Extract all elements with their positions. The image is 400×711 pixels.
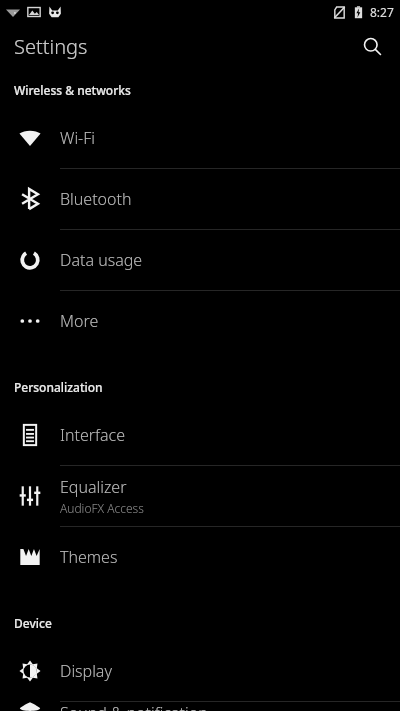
button[interactable]: Sound & notification bbox=[0, 702, 400, 711]
button[interactable]: Equalizer bbox=[0, 466, 400, 526]
staticText: More bbox=[60, 310, 99, 332]
staticText: Settings bbox=[14, 33, 88, 60]
staticText: Personalization bbox=[14, 379, 103, 395]
button[interactable]: Themes bbox=[0, 527, 400, 587]
staticText: Device bbox=[14, 615, 52, 631]
button[interactable]: Interface bbox=[0, 405, 400, 465]
staticText: Interface bbox=[60, 424, 126, 446]
staticText: Equalizer bbox=[60, 476, 127, 498]
staticText: Themes bbox=[60, 546, 118, 568]
button[interactable]: More bbox=[0, 291, 400, 351]
button[interactable]: Bluetooth bbox=[0, 169, 400, 229]
button[interactable]: Data usage bbox=[0, 230, 400, 290]
staticText: Data usage bbox=[60, 249, 143, 271]
staticText: Bluetooth bbox=[60, 188, 132, 210]
staticText: 8:27 bbox=[370, 4, 394, 20]
staticText: Display bbox=[60, 660, 112, 682]
button[interactable]: Wi-Fi bbox=[0, 108, 400, 168]
staticText: Sound & notification bbox=[60, 702, 208, 711]
button[interactable]: Search bbox=[352, 26, 392, 66]
staticText: Wireless & networks bbox=[14, 82, 131, 98]
staticText: AudioFX Access bbox=[60, 500, 144, 516]
button[interactable]: Display bbox=[0, 641, 400, 701]
staticText: Wi-Fi bbox=[60, 127, 96, 149]
